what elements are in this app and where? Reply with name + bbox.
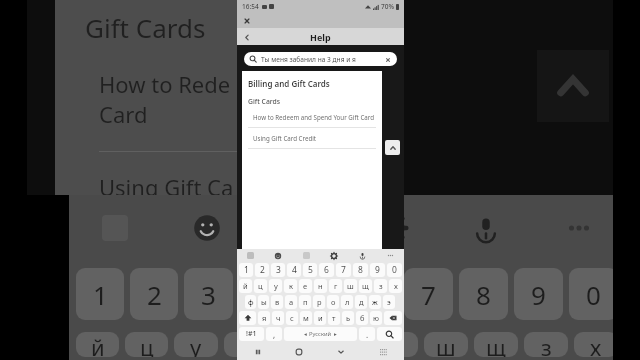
button[interactable]: Hide keyboard [320,344,362,360]
button[interactable]: 8 [353,263,368,277]
button[interactable]: 6 [319,263,334,277]
button[interactable]: ю [370,311,382,325]
button[interactable]: с [286,311,298,325]
staticText: 5 [308,264,313,276]
button[interactable]: 7 [336,263,351,277]
staticText: н [339,332,353,357]
button[interactable]: Using Gift Card Credit [253,134,317,142]
staticText: х [590,332,602,357]
staticText: у [274,281,278,291]
staticText: 3 [201,277,216,312]
button[interactable]: More [376,251,404,260]
button[interactable]: о [327,295,339,309]
button[interactable]: 9 [370,263,385,277]
button[interactable]: я [258,311,270,325]
button[interactable]: 0 [387,263,402,277]
button[interactable]: ◂ [284,327,357,341]
button[interactable]: п [299,295,311,309]
staticText: ш [436,332,456,357]
staticText: в [275,297,280,307]
staticText: 3 [276,264,281,276]
staticText: е [303,281,308,291]
button[interactable]: Recents [237,344,278,360]
button[interactable]: ч [272,311,284,325]
button[interactable]: 3 [271,263,285,277]
staticText: 2 [147,277,162,312]
button[interactable] [384,311,402,325]
button[interactable]: и [314,311,326,325]
button[interactable]: ь [342,311,354,325]
button[interactable]: щ [359,279,372,293]
button[interactable]: Stickers [237,252,264,259]
button[interactable]: э [383,295,395,309]
button[interactable]: ж [369,295,381,309]
staticText: п [303,297,308,307]
button[interactable]: д [355,295,367,309]
staticText: й [243,281,248,291]
button[interactable]: в [271,295,283,309]
button[interactable]: , [266,327,282,341]
button[interactable]: 1 [239,263,253,277]
staticText: к [289,281,293,291]
staticText: 1 [244,264,249,276]
button[interactable]: е [299,279,312,293]
button[interactable]: How to Redeem and Spend Your Gift Card [253,113,375,121]
button[interactable]: Emoji [264,252,292,260]
staticText: е [290,332,303,357]
button[interactable]: Voice input [348,251,376,260]
button[interactable]: Back [240,31,252,43]
staticText: ц [140,332,154,357]
staticText: щ [362,281,369,291]
staticText: ы [261,297,267,307]
button[interactable]: з [374,279,387,293]
button[interactable]: Keyboard layout [362,344,404,360]
staticText: ф [248,297,254,307]
button[interactable]: м [300,311,312,325]
staticText: ▸ [334,331,337,337]
staticText: 1 [93,277,108,312]
button[interactable]: к [284,279,297,293]
button[interactable]: . [359,327,375,341]
staticText: ь [346,313,351,323]
button[interactable]: ш [344,279,357,293]
button[interactable]: х [389,279,402,293]
staticText: Ты меня забанил на 3 дня и я [261,55,383,64]
button[interactable]: Close [241,15,252,26]
staticText: д [359,297,364,307]
staticText: 7 [421,277,436,312]
staticText: Русский [309,330,332,338]
button[interactable]: Collapse [385,140,400,155]
button[interactable]: й [239,279,252,293]
button[interactable]: Clear [383,55,392,64]
button[interactable]: 5 [303,263,317,277]
staticText: з [541,332,552,357]
button[interactable]: ф [245,295,256,309]
staticText: 5 [311,277,326,312]
staticText: . [366,329,369,340]
button[interactable]: Ты меня забанил на 3 дня и я [244,52,397,66]
staticText: Gift Cards [248,97,281,106]
button[interactable] [377,327,402,341]
button[interactable]: 2 [255,263,269,277]
button[interactable]: Clipboard [292,252,320,259]
button[interactable]: н [314,279,327,293]
button[interactable]: Home [278,344,320,360]
button[interactable]: т [328,311,340,325]
button[interactable]: Settings [320,252,348,260]
staticText: э [387,297,391,307]
staticText: 7 [341,264,346,276]
button[interactable]: ц [254,279,267,293]
button[interactable]: а [285,295,297,309]
button[interactable] [239,311,256,325]
staticText: х [394,281,398,291]
button[interactable]: л [341,295,353,309]
button[interactable]: ы [258,295,269,309]
button[interactable]: б [356,311,368,325]
staticText: г [391,332,401,357]
button[interactable]: 4 [287,263,301,277]
button[interactable]: !#1 [239,327,264,341]
button[interactable]: у [269,279,282,293]
button[interactable]: р [313,295,325,309]
button[interactable]: г [329,279,342,293]
staticText: з [379,281,383,291]
